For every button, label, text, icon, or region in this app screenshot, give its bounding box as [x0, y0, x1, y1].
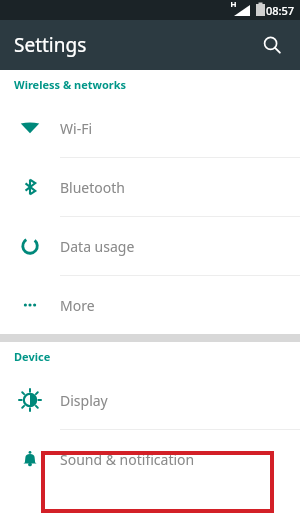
button[interactable]: Wi-Fi [0, 99, 300, 158]
staticText: Wireless & networks [14, 77, 127, 92]
button[interactable]: Search [254, 27, 290, 63]
staticText: Data usage [60, 237, 135, 256]
button[interactable]: Display [0, 371, 300, 430]
button[interactable]: Bluetooth [0, 158, 300, 217]
staticText: Display [60, 391, 108, 410]
staticText: Bluetooth [60, 178, 125, 197]
staticText: 08:57 [266, 3, 295, 18]
button[interactable]: More [0, 276, 300, 334]
button[interactable]: Sound & notification [0, 430, 300, 488]
staticText: More [60, 296, 95, 315]
button[interactable]: Data usage [0, 217, 300, 276]
staticText: Settings [14, 32, 87, 58]
staticText: Sound & notification [60, 450, 195, 469]
staticText: Wi-Fi [60, 119, 93, 138]
staticText: Device [14, 349, 51, 364]
